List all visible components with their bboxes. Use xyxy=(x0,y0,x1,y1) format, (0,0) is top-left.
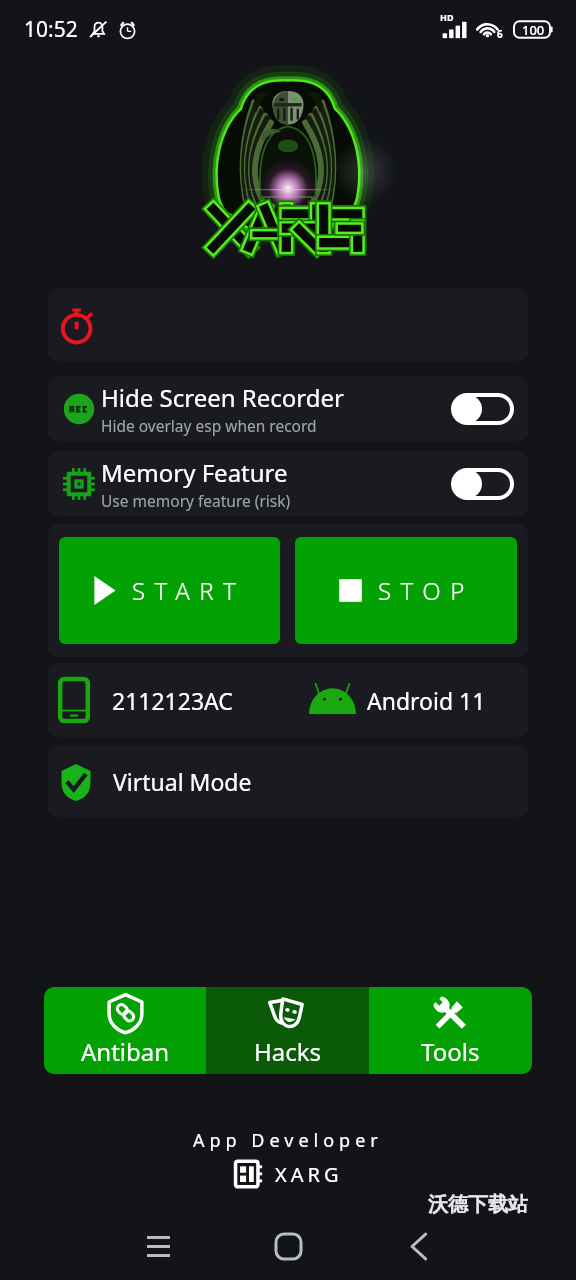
staticText: 6 xyxy=(497,27,503,41)
staticText: Virtual Mode xyxy=(113,766,252,797)
staticText: 100 xyxy=(522,21,545,39)
staticText: 10:52 xyxy=(24,15,78,44)
button[interactable]: Memory Feature toggle xyxy=(451,468,514,500)
button[interactable]: Back xyxy=(388,1216,448,1276)
staticText: 沃德下载站 xyxy=(428,1192,528,1217)
staticText: Hide Screen Recorder xyxy=(101,381,344,414)
button[interactable]: Hacks xyxy=(206,987,369,1074)
button[interactable]: Timer xyxy=(48,288,528,361)
button[interactable]: Virtual Mode xyxy=(48,746,528,817)
staticText: XARG xyxy=(275,1161,343,1188)
button[interactable]: Hide Screen Recorder xyxy=(48,376,528,441)
staticText: App Developer xyxy=(193,1128,383,1153)
staticText: 2112123AC xyxy=(112,685,233,716)
staticText: Antiban xyxy=(81,1035,170,1068)
button[interactable]: START xyxy=(59,537,280,644)
staticText: Hide overlay esp when record xyxy=(101,415,317,436)
staticText: Use memory feature (risk) xyxy=(101,490,291,511)
staticText: STOP xyxy=(378,574,474,607)
button[interactable]: Home xyxy=(258,1216,318,1276)
button[interactable]: Hide Screen Recorder toggle xyxy=(451,393,514,425)
button[interactable]: Memory Feature xyxy=(48,451,528,516)
staticText: START xyxy=(132,574,246,607)
staticText: HD xyxy=(440,11,454,23)
staticText: Hacks xyxy=(254,1035,322,1068)
button[interactable]: Tools xyxy=(369,987,532,1074)
button[interactable]: Recents xyxy=(128,1216,188,1276)
staticText: Android 11 xyxy=(367,685,486,716)
staticText: Tools xyxy=(421,1035,480,1068)
button[interactable]: Antiban xyxy=(44,987,206,1074)
staticText: Memory Feature xyxy=(101,456,288,489)
button[interactable]: STOP xyxy=(295,537,517,644)
